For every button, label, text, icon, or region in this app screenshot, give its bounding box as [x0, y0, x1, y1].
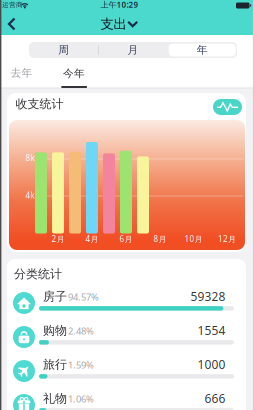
staticText: 购物	[43, 323, 67, 338]
staticText: 分类统计	[14, 267, 62, 281]
staticText: 1000	[197, 356, 225, 372]
staticText: 年	[197, 43, 208, 56]
button[interactable]: Chart detail	[213, 99, 242, 115]
staticText: 今年	[63, 67, 85, 80]
staticText: 1.06%	[68, 393, 94, 405]
staticText: 12月	[218, 234, 236, 244]
button[interactable]: 礼物	[7, 390, 246, 410]
staticText: 59328	[190, 288, 225, 304]
staticText: 94.57%	[68, 291, 99, 303]
staticText: 去年	[10, 66, 32, 79]
staticText: 8k	[25, 153, 34, 163]
staticText: 2.48%	[68, 325, 94, 337]
button[interactable]: 旅行	[7, 356, 246, 390]
staticText: 8月	[153, 234, 166, 244]
staticText: 1.59%	[68, 359, 94, 371]
button[interactable]: 今年	[59, 64, 89, 88]
button[interactable]: 房子	[7, 288, 246, 322]
staticText: 运营商	[2, 1, 23, 9]
staticText: 4月	[85, 234, 98, 244]
staticText: 上午10:29	[100, 0, 138, 10]
button[interactable]: 支出	[100, 13, 140, 35]
staticText: 支出	[100, 16, 126, 32]
staticText: 10月	[184, 234, 202, 244]
button[interactable]: 月	[98, 42, 167, 58]
staticText: 房子	[43, 289, 67, 304]
button[interactable]: 去年	[3, 62, 39, 84]
staticText: 周	[58, 43, 69, 56]
staticText: 礼物	[43, 391, 67, 406]
staticText: 旅行	[43, 357, 67, 372]
staticText: 6月	[119, 234, 132, 244]
staticText: 666	[204, 390, 225, 406]
staticText: 月	[127, 43, 138, 56]
button[interactable]: 周	[29, 42, 98, 58]
button[interactable]: 购物	[7, 322, 246, 356]
staticText: 4k	[25, 190, 34, 201]
button[interactable]: 年	[168, 42, 237, 58]
button[interactable]: Back	[3, 14, 19, 34]
staticText: 2月	[51, 234, 64, 244]
staticText: 1554	[197, 322, 225, 338]
staticText: 收支统计	[15, 97, 63, 111]
